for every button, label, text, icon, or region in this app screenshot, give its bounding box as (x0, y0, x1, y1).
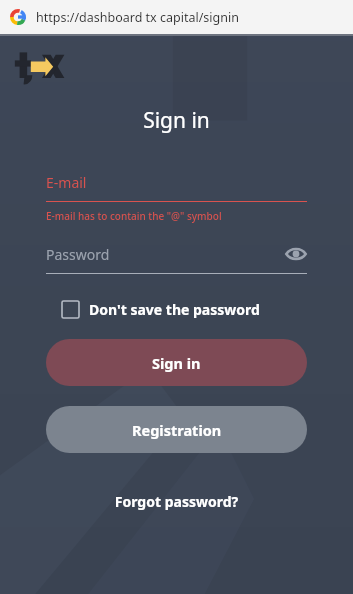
button[interactable]: Password (46, 245, 307, 274)
button[interactable]: Sign in (46, 339, 307, 386)
button[interactable]: Show password (285, 243, 307, 265)
button[interactable]: tx capital logo (14, 46, 70, 86)
staticText: E-mail has to contain the "@" symbol (46, 209, 222, 223)
button[interactable]: Registration (46, 406, 307, 453)
staticText: Sign in (152, 353, 201, 373)
staticText: https://dashboard tx capital/signin (36, 9, 239, 26)
staticText: Registration (132, 420, 222, 440)
staticText: Password (46, 245, 110, 264)
button[interactable]: E-mail (46, 173, 307, 223)
staticText: Forgot password? (0, 492, 353, 511)
staticText: Don't save the password (89, 300, 260, 319)
button[interactable]: Forgot password? (0, 488, 353, 515)
button[interactable]: Don't save the password (0, 300, 353, 319)
staticText: Sign in (0, 106, 353, 135)
button[interactable]: https://dashboard tx capital/signin (0, 0, 353, 34)
staticText: E-mail (46, 173, 87, 192)
